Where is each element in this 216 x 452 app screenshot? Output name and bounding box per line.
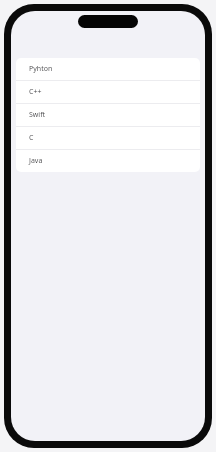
button[interactable]: C++	[16, 81, 200, 103]
button[interactable]: C	[16, 127, 200, 149]
staticText: C++	[29, 87, 42, 97]
staticText: C	[29, 133, 34, 143]
staticText: Java	[29, 156, 43, 166]
staticText: Pyhton	[29, 64, 53, 74]
button[interactable]: Swift	[16, 104, 200, 126]
staticText: Swift	[29, 110, 46, 120]
button[interactable]: Pyhton	[16, 58, 200, 80]
button[interactable]: Java	[16, 150, 200, 172]
